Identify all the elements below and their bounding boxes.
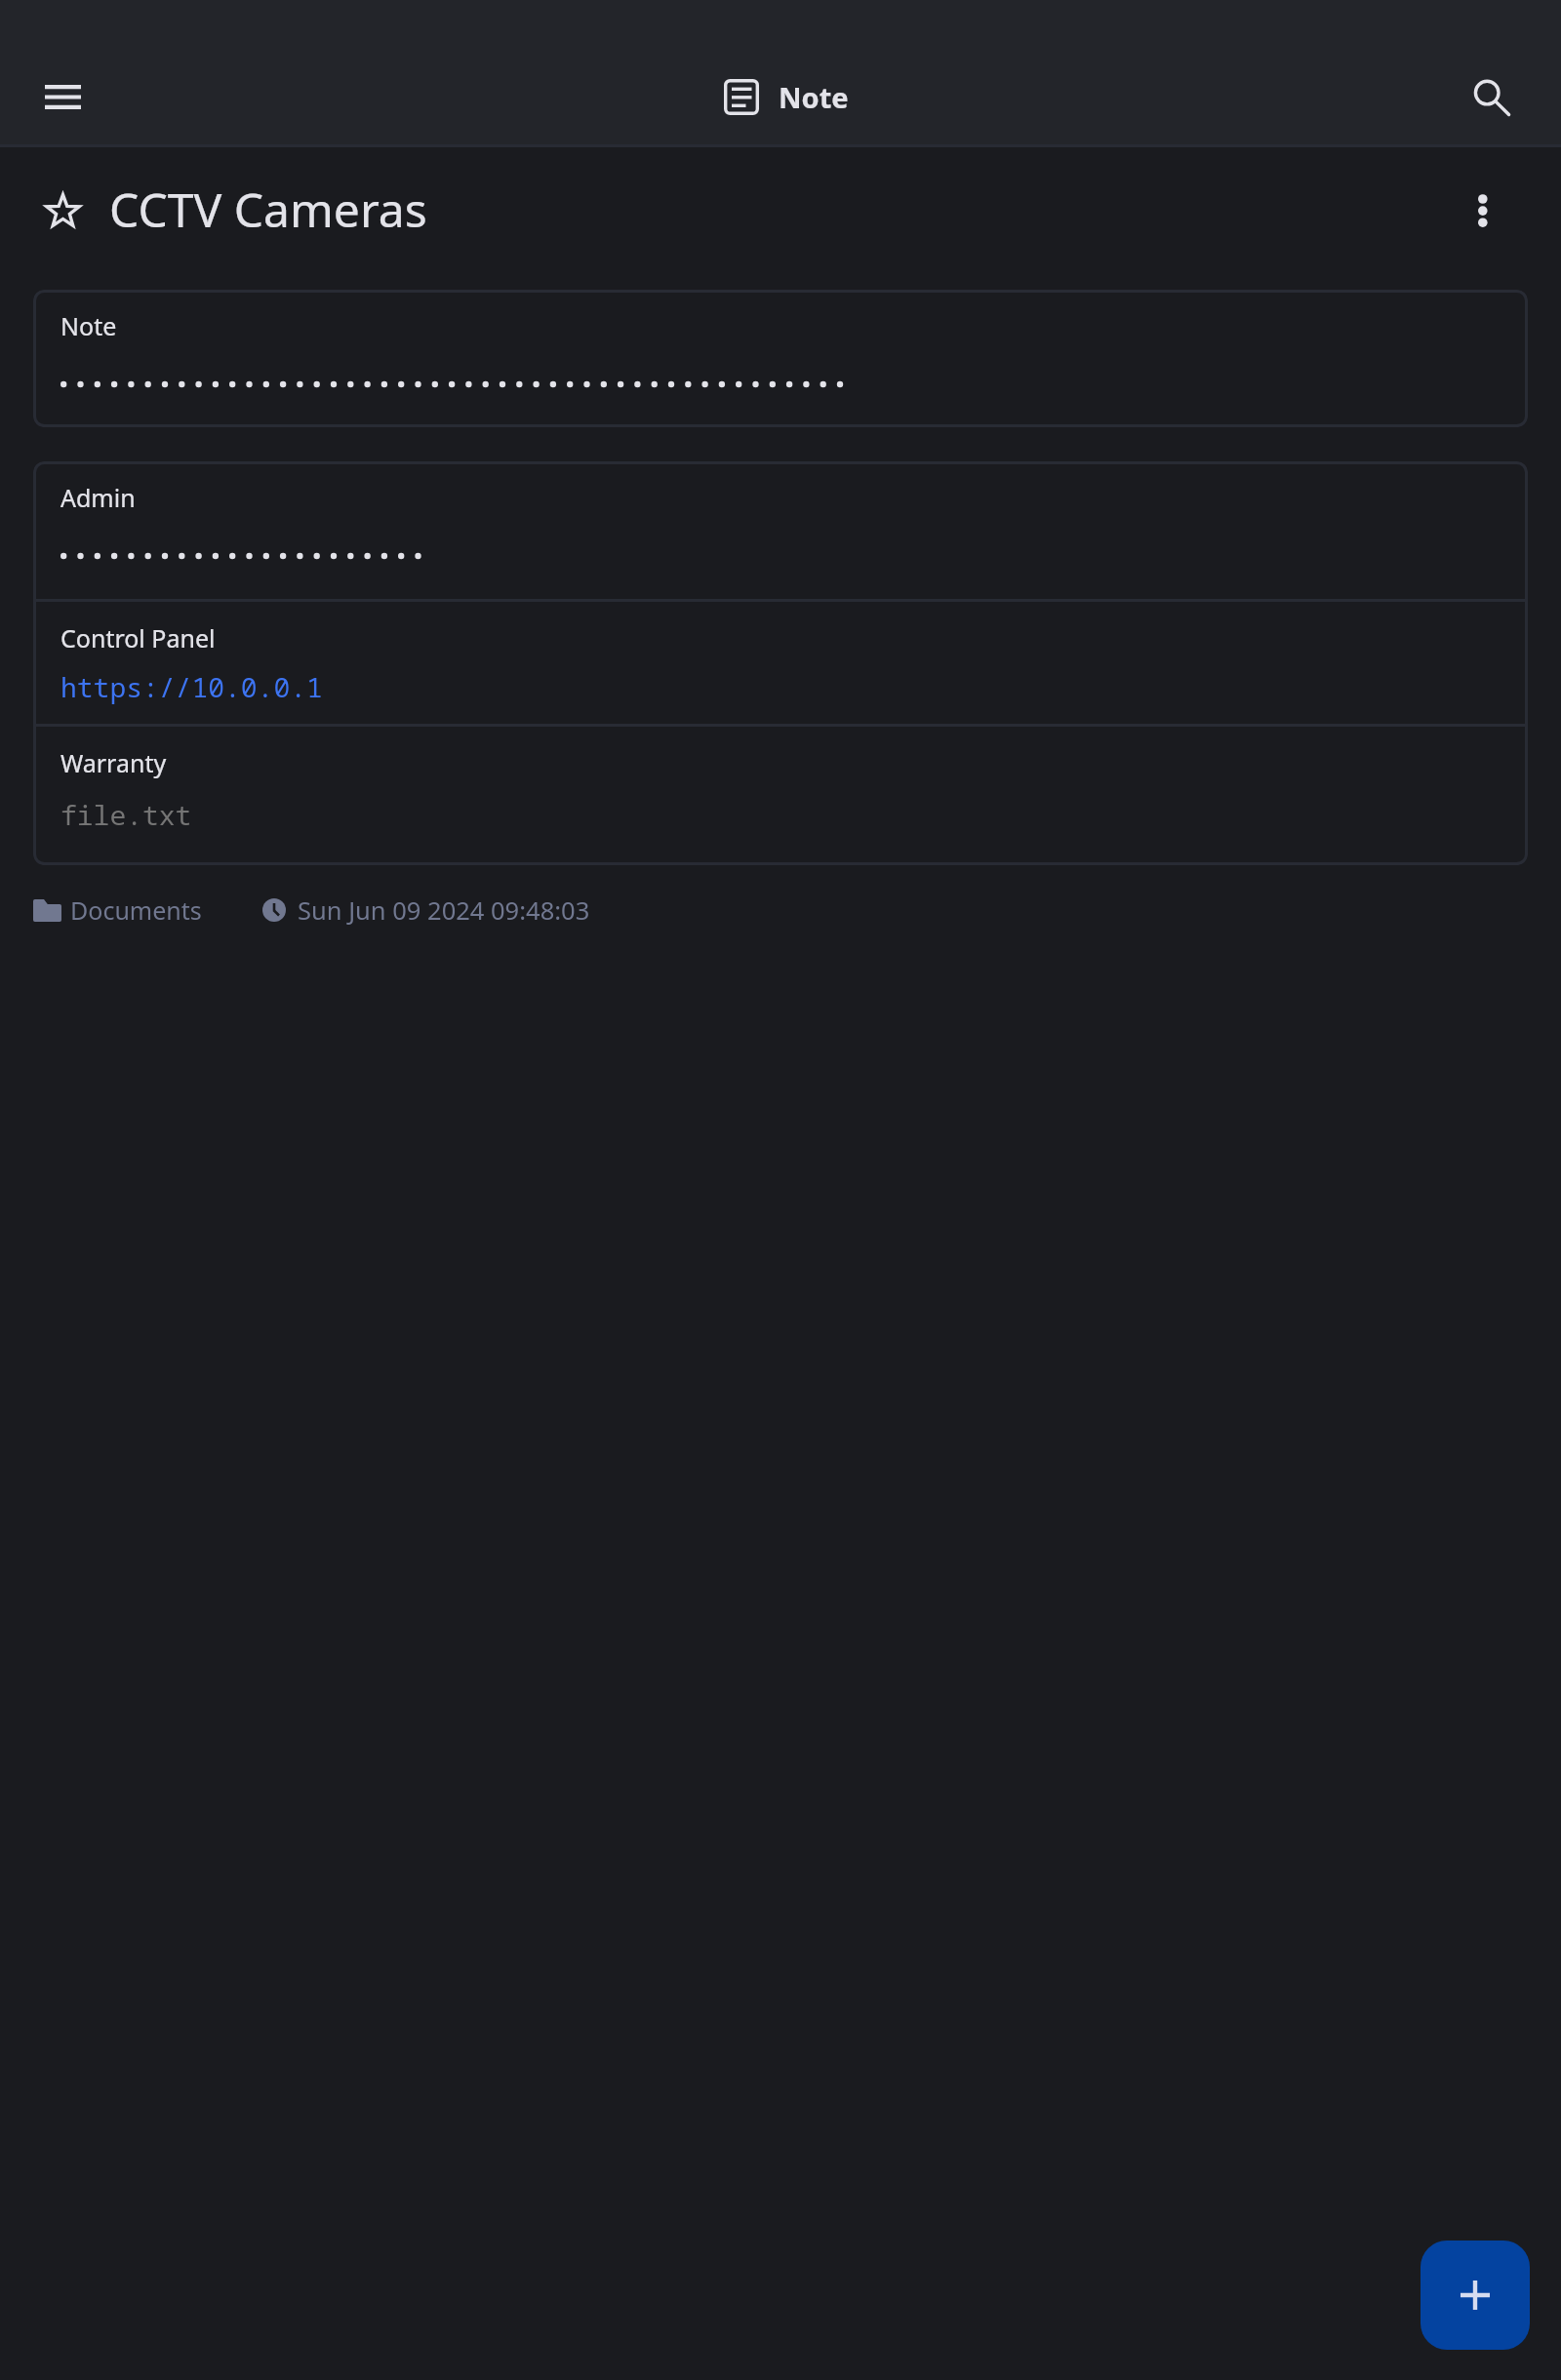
staticText: Warranty [60, 746, 167, 779]
staticText: file.txt [60, 796, 192, 833]
staticText: Sun Jun 09 2024 09:48:03 [298, 893, 590, 928]
staticText: Control Panel [60, 621, 216, 654]
staticText: Note [60, 309, 117, 342]
button[interactable]: Favorite [43, 188, 86, 231]
button[interactable]: https://10.0.0.1 [60, 668, 323, 705]
staticText: Documents [70, 893, 202, 927]
button[interactable]: Search [1444, 49, 1541, 144]
staticText: Note [779, 78, 849, 116]
staticText: Admin [60, 481, 136, 514]
button[interactable]: Menu [14, 49, 111, 144]
button[interactable]: More options [1439, 165, 1527, 253]
staticText: CCTV Cameras [109, 178, 427, 241]
button[interactable]: Admin [33, 461, 1528, 865]
button[interactable]: Note [33, 290, 1528, 427]
button[interactable]: Add [1421, 2241, 1530, 2350]
